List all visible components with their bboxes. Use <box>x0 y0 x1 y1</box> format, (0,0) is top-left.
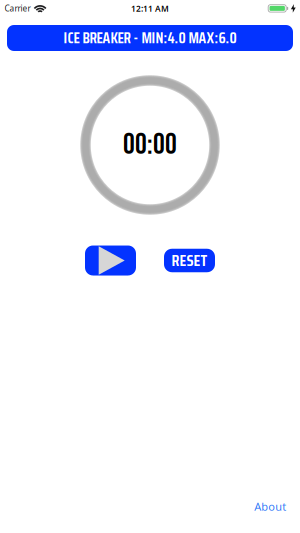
button[interactable]: Start <box>85 245 136 275</box>
button[interactable]: About <box>254 499 286 514</box>
staticText: Carrier <box>5 3 31 14</box>
staticText: 00:00 <box>123 127 177 163</box>
staticText: ICE BREAKER - MIN:4.0 MAX:6.0 <box>63 26 236 50</box>
staticText: RESET <box>171 248 207 273</box>
staticText: About <box>254 499 286 514</box>
staticText: 12:11 AM <box>131 3 169 14</box>
button[interactable]: RESET <box>164 248 215 273</box>
